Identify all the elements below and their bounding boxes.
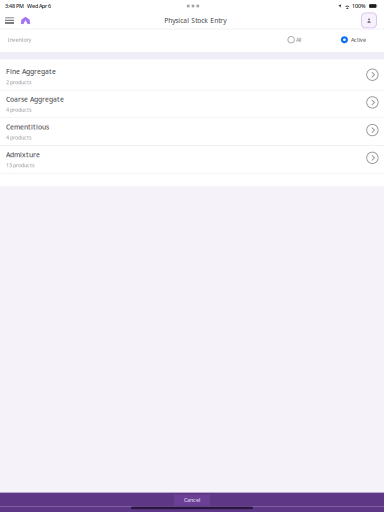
button[interactable]: Fine Aggregate	[0, 63, 384, 91]
button[interactable]: Active	[339, 36, 367, 44]
staticText: Active	[351, 36, 366, 43]
staticText: 100%	[352, 2, 366, 10]
button[interactable]: Admixture	[0, 146, 384, 174]
staticText: 3:48 PM Wed Apr 6	[5, 2, 51, 10]
button[interactable]: Menu	[0, 12, 19, 29]
staticText: Cancel	[184, 496, 200, 504]
staticText: 4 products	[6, 134, 32, 141]
button[interactable]: Cancel	[174, 494, 210, 505]
button[interactable]: Cementitious	[0, 118, 384, 146]
button[interactable]: Account settings	[360, 12, 384, 29]
staticText: Fine Aggregate	[6, 67, 56, 76]
button[interactable]: Coarse Aggregate	[0, 91, 384, 118]
staticText: Physical Stock Entry	[164, 16, 226, 25]
staticText: Coarse Aggregate	[6, 95, 64, 104]
button[interactable]: All	[286, 36, 302, 44]
staticText: 4 products	[6, 106, 32, 113]
staticText: Cementitious	[6, 122, 49, 131]
staticText: All	[296, 36, 301, 43]
staticText: 13 products	[6, 162, 35, 169]
staticText: Inventory	[8, 36, 32, 43]
staticText: Admixture	[6, 150, 40, 159]
staticText: 2 products	[6, 79, 32, 86]
